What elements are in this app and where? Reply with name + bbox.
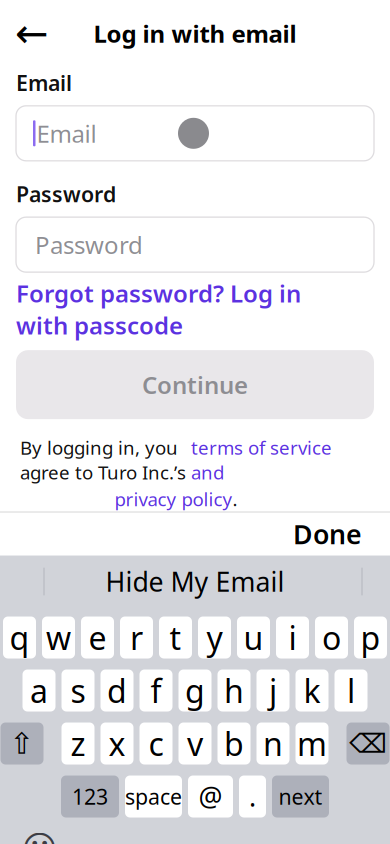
button[interactable]: g xyxy=(178,669,211,711)
staticText: @ xyxy=(198,779,222,814)
button[interactable]: Continue xyxy=(16,350,374,419)
button[interactable]: a xyxy=(22,669,55,711)
staticText: next xyxy=(278,782,322,811)
button[interactable]: n xyxy=(256,722,289,764)
staticText: ⌫ xyxy=(349,728,387,759)
staticText: Log in with email xyxy=(93,17,296,49)
button[interactable]: o xyxy=(315,616,348,658)
staticText: 123 xyxy=(72,782,108,811)
staticText: n xyxy=(263,722,283,765)
button[interactable]: Shift xyxy=(0,722,43,764)
button[interactable]: x xyxy=(100,722,133,764)
button[interactable]: s xyxy=(61,669,94,711)
staticText: Email xyxy=(16,68,72,97)
button[interactable]: Delete xyxy=(346,722,389,764)
staticText: t xyxy=(169,616,181,659)
staticText: ← xyxy=(15,11,49,56)
staticText: v xyxy=(187,722,203,765)
staticText: b xyxy=(224,722,244,765)
staticText: terms of service and xyxy=(191,435,332,485)
button[interactable]: c xyxy=(139,722,172,764)
button[interactable]: h xyxy=(217,669,250,711)
staticText: f xyxy=(150,669,161,712)
button[interactable]: space xyxy=(125,775,182,817)
staticText: l xyxy=(347,669,355,712)
button[interactable]: r xyxy=(120,616,153,658)
staticText: w xyxy=(46,616,71,659)
staticText: o xyxy=(322,616,341,659)
staticText: r xyxy=(130,616,143,659)
button[interactable]: p xyxy=(354,616,387,658)
button[interactable]: i xyxy=(276,616,309,658)
staticText: a xyxy=(30,669,48,712)
staticText: privacy policy xyxy=(114,487,232,511)
staticText: Continue xyxy=(142,369,248,401)
button[interactable]: Back xyxy=(8,9,56,57)
button[interactable]: j xyxy=(256,669,289,711)
button[interactable]: Done xyxy=(285,513,370,555)
staticText: e xyxy=(88,616,106,659)
button[interactable]: w xyxy=(42,616,75,658)
staticText: d xyxy=(107,669,127,712)
staticText: m xyxy=(297,722,327,765)
staticText: Password xyxy=(35,229,143,261)
button[interactable]: 123 xyxy=(61,775,119,817)
staticText: y xyxy=(206,616,222,659)
button[interactable]: Hide My Email xyxy=(105,560,284,602)
button[interactable]: Forgot password? Log in with passcode xyxy=(16,293,301,325)
staticText: Email xyxy=(36,117,96,149)
staticText: . xyxy=(232,487,237,511)
staticText: By logging in, you agree to Turo Inc.’s xyxy=(20,435,191,485)
button[interactable]: terms of service and xyxy=(191,435,332,485)
button[interactable]: u xyxy=(237,616,270,658)
button[interactable]: @ xyxy=(188,775,233,817)
button[interactable]: z xyxy=(61,722,94,764)
staticText: Forgot password? Log in with passcode xyxy=(16,277,301,341)
staticText: c xyxy=(148,722,163,765)
staticText: Done xyxy=(293,516,362,552)
staticText: u xyxy=(243,616,263,659)
button[interactable]: t xyxy=(159,616,192,658)
button[interactable]: m xyxy=(295,722,328,764)
button[interactable]: b xyxy=(217,722,250,764)
staticText: Password xyxy=(16,180,116,208)
staticText: k xyxy=(303,669,320,712)
staticText: p xyxy=(360,616,380,659)
button[interactable]: f xyxy=(139,669,172,711)
staticText: q xyxy=(9,616,29,659)
staticText: j xyxy=(269,669,277,712)
staticText: space xyxy=(125,782,182,811)
staticText: i xyxy=(288,616,296,659)
button[interactable]: privacy policy xyxy=(114,487,232,511)
button[interactable]: y xyxy=(198,616,231,658)
staticText: . xyxy=(249,779,256,814)
button[interactable]: q xyxy=(3,616,36,658)
button[interactable]: . xyxy=(239,775,266,817)
staticText: Hide My Email xyxy=(105,564,284,599)
button[interactable]: next xyxy=(272,775,329,817)
staticText: x xyxy=(108,722,125,765)
staticText: s xyxy=(70,669,85,712)
button[interactable]: d xyxy=(100,669,133,711)
button[interactable]: Emoji keyboard xyxy=(18,827,60,844)
staticText: g xyxy=(185,669,205,712)
button[interactable]: k xyxy=(295,669,328,711)
staticText: ☺ xyxy=(21,829,57,844)
staticText: ⇧ xyxy=(9,727,34,760)
staticText: z xyxy=(70,722,85,765)
staticText: h xyxy=(224,669,244,712)
button[interactable]: l xyxy=(334,669,367,711)
button[interactable]: v xyxy=(178,722,211,764)
button[interactable]: e xyxy=(81,616,114,658)
